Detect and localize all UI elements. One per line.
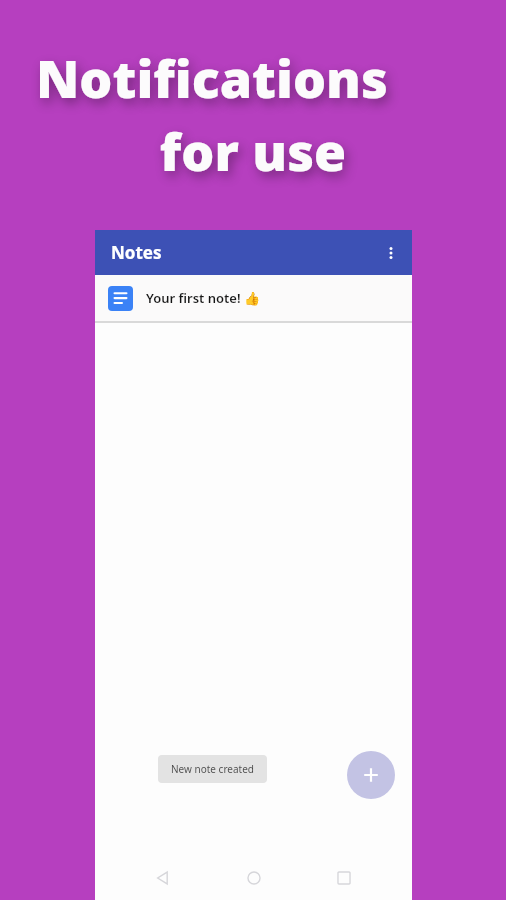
button[interactable]: Your first note! 👍	[95, 275, 412, 321]
staticText: Notes	[111, 241, 162, 264]
staticText: Notifications	[36, 42, 470, 113]
staticText: New note created	[171, 762, 254, 776]
button[interactable]: Notes	[95, 235, 170, 270]
button[interactable]: Home	[232, 856, 276, 900]
staticText: for use	[0, 115, 506, 186]
button[interactable]: Back	[141, 856, 185, 900]
button[interactable]: Recent apps	[322, 856, 366, 900]
button[interactable]: More options	[370, 232, 412, 274]
staticText: Your first note! 👍	[146, 289, 261, 307]
button[interactable]: New note	[347, 751, 395, 799]
button[interactable]: New note created	[158, 755, 267, 783]
